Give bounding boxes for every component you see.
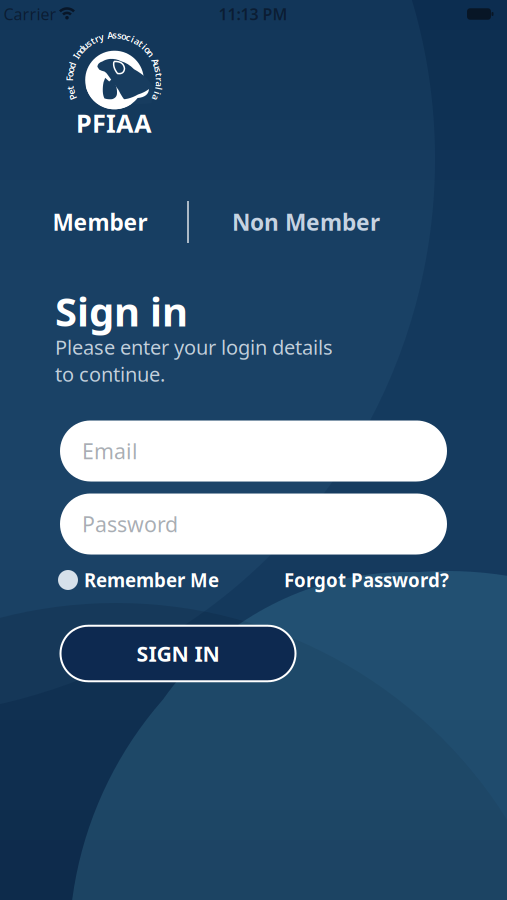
staticText: y <box>99 31 104 43</box>
staticText: a <box>135 35 140 47</box>
staticText: n <box>148 47 154 60</box>
staticText: Forgot Password? <box>284 568 449 592</box>
staticText: Sign in <box>55 284 188 337</box>
staticText: i <box>156 87 159 99</box>
staticText: to continue. <box>55 361 165 387</box>
staticText: t <box>157 69 161 81</box>
staticText: 11:13 PM <box>218 3 287 25</box>
staticText: l <box>157 82 160 95</box>
staticText: d <box>69 59 75 71</box>
staticText: d <box>79 43 85 55</box>
staticText: Remember Me <box>84 568 219 592</box>
staticText: Email <box>82 437 138 465</box>
button[interactable]: Forgot Password? <box>58 568 449 592</box>
button[interactable]: Remember Me <box>58 568 449 592</box>
staticText: Member <box>52 207 147 237</box>
staticText <box>69 77 71 89</box>
staticText: i <box>131 33 134 45</box>
staticText: e <box>69 86 74 99</box>
button[interactable]: Member <box>42 199 157 245</box>
staticText: I <box>74 50 77 63</box>
button[interactable]: Non Member <box>222 199 390 245</box>
staticText: s <box>112 29 117 41</box>
staticText <box>73 54 75 67</box>
staticText: o <box>121 30 127 42</box>
staticText: SIGN IN <box>136 639 219 668</box>
staticText: Password <box>82 510 178 538</box>
staticText: P <box>70 91 76 103</box>
button[interactable]: Email <box>60 420 447 481</box>
staticText: u <box>82 40 88 52</box>
staticText: s <box>156 64 161 76</box>
staticText: s <box>86 37 91 49</box>
staticText: A <box>152 55 158 68</box>
staticText: o <box>67 68 73 80</box>
staticText: A <box>107 29 113 41</box>
staticText: Carrier <box>3 3 56 25</box>
staticText: PFIAA <box>76 106 152 140</box>
staticText: Please enter your login details <box>55 334 333 360</box>
staticText: c <box>126 31 131 43</box>
staticText: t <box>91 34 95 47</box>
staticText: n <box>76 47 82 59</box>
button[interactable]: Password <box>60 493 447 554</box>
staticText: F <box>67 72 72 85</box>
staticText: o <box>68 63 74 76</box>
staticText: r <box>157 73 161 86</box>
staticText: s <box>117 29 122 41</box>
staticText: o <box>145 44 151 56</box>
staticText: a <box>157 78 162 90</box>
staticText <box>152 51 154 63</box>
staticText: t <box>68 82 72 94</box>
staticText: r <box>95 32 99 45</box>
button[interactable]: SIGN IN <box>59 625 296 682</box>
staticText: a <box>153 91 158 104</box>
staticText: Non Member <box>232 207 380 237</box>
staticText: i <box>143 40 146 53</box>
staticText: t <box>139 37 143 50</box>
staticText: u <box>154 60 160 72</box>
